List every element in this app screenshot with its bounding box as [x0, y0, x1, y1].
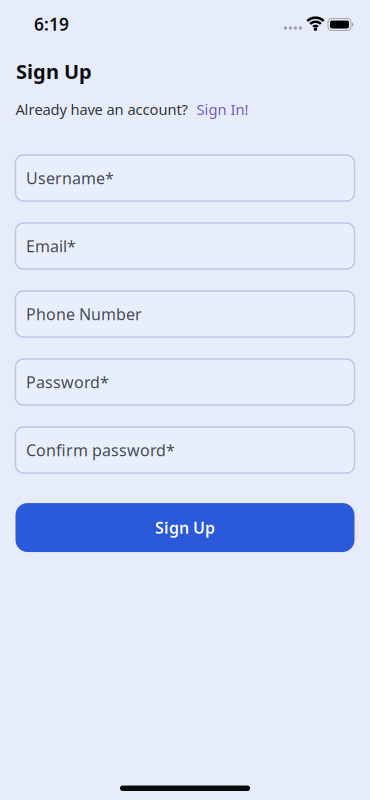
button[interactable]: Sign Up — [15, 503, 354, 552]
button[interactable]: Confirm password* — [15, 427, 354, 473]
staticText: Email* — [26, 235, 76, 257]
button[interactable]: Username* — [15, 155, 354, 201]
button[interactable]: Email* — [15, 223, 354, 269]
button[interactable]: Password* — [15, 359, 354, 405]
staticText: Username* — [26, 167, 114, 189]
staticText: Sign In! — [196, 100, 248, 119]
staticText: Password* — [26, 371, 109, 393]
button[interactable]: Sign In! — [187, 100, 248, 119]
button[interactable]: Phone Number — [15, 291, 354, 337]
staticText: Sign Up — [155, 517, 215, 538]
staticText: Already have an account? — [15, 100, 187, 119]
staticText: Confirm password* — [26, 439, 175, 461]
staticText: Phone Number — [26, 303, 142, 325]
staticText: 6:19 — [34, 12, 69, 35]
staticText: Sign Up — [16, 58, 92, 85]
